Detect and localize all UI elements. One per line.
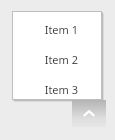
staticText: Item 1 xyxy=(44,22,78,34)
button[interactable]: Item 2 xyxy=(12,52,102,64)
button[interactable]: Scroll up xyxy=(72,100,106,127)
button[interactable]: Item 3 xyxy=(12,82,102,94)
staticText: Item 2 xyxy=(44,52,78,64)
button[interactable]: Item 1 xyxy=(12,22,102,34)
staticText: Item 3 xyxy=(44,82,78,94)
